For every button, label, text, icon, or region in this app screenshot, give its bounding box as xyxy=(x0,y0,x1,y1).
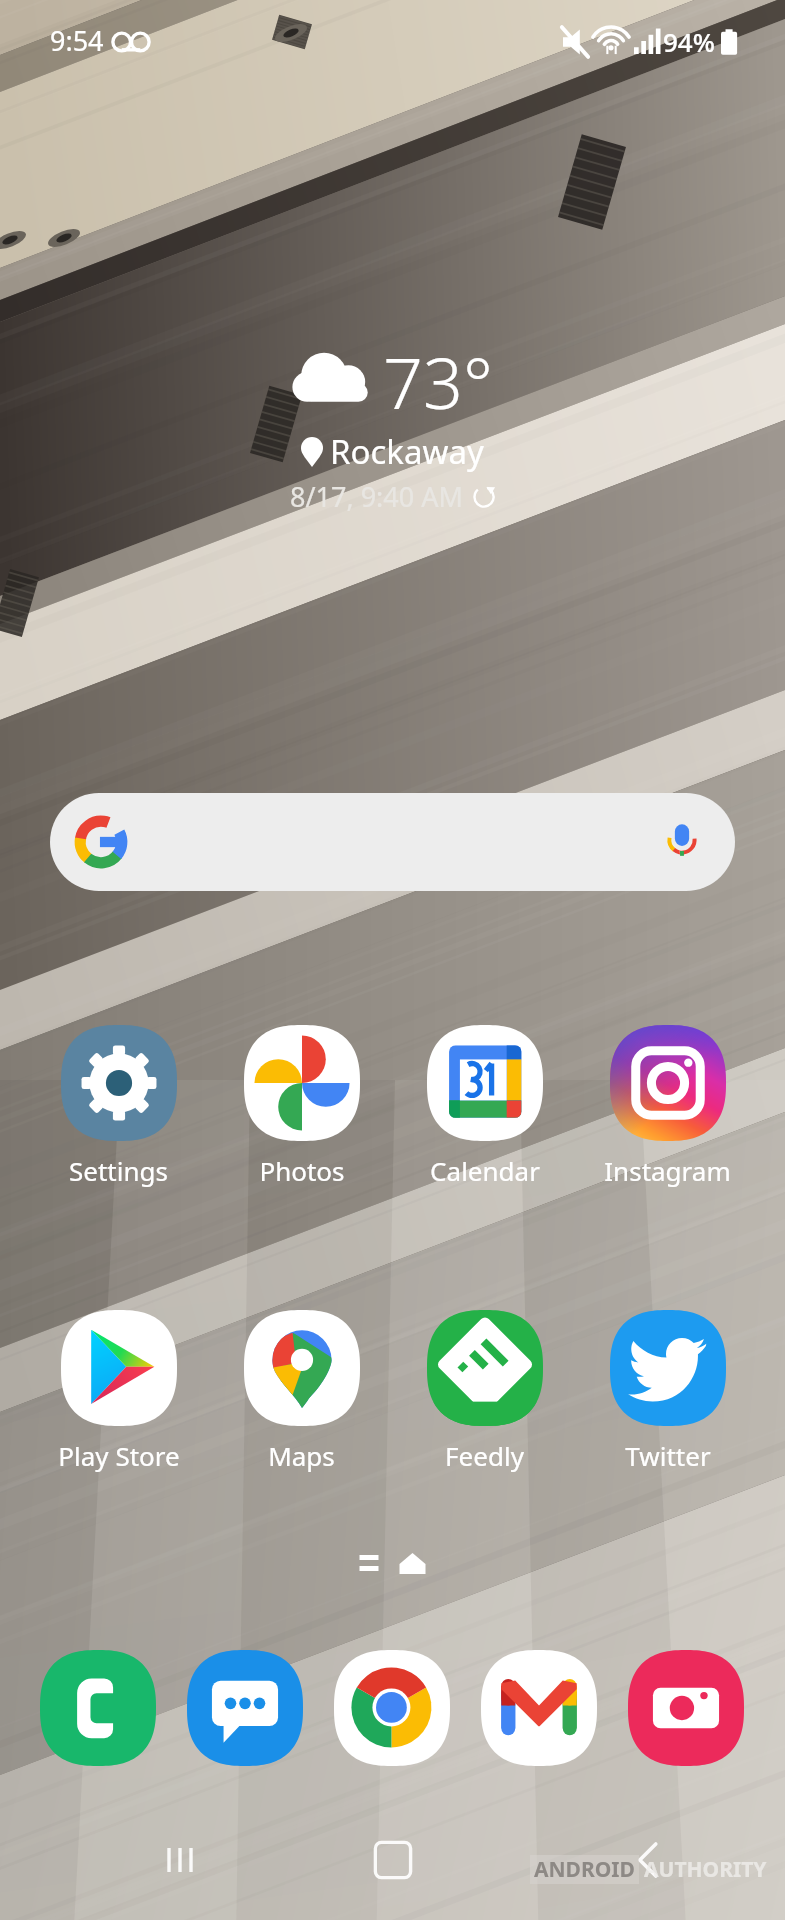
button[interactable]: Photos xyxy=(210,1025,393,1188)
button[interactable]: Twitter xyxy=(576,1310,759,1473)
staticText: Feedly xyxy=(445,1438,524,1473)
button[interactable]: Play Store xyxy=(27,1310,210,1473)
staticText: Maps xyxy=(268,1438,335,1473)
staticText: Photos xyxy=(259,1153,345,1188)
staticText: 94% xyxy=(663,24,715,59)
staticText: Rockaway xyxy=(330,429,484,474)
staticText: 9:54 xyxy=(50,22,104,59)
staticText: Twitter xyxy=(625,1438,711,1473)
button[interactable]: Maps xyxy=(210,1310,393,1473)
button[interactable]: Recents xyxy=(140,1820,220,1900)
button[interactable]: Camera xyxy=(628,1650,744,1766)
button[interactable]: Settings xyxy=(27,1025,210,1188)
button[interactable]: Messages xyxy=(187,1650,303,1766)
button[interactable]: Back xyxy=(607,1820,687,1900)
staticText: ANDROID xyxy=(534,1855,635,1884)
staticText: 8/17, 9:40 AM xyxy=(290,478,463,515)
staticText: Settings xyxy=(69,1153,168,1188)
button[interactable]: Phone xyxy=(40,1650,156,1766)
button[interactable]: Gmail xyxy=(481,1650,597,1766)
button[interactable]: Instagram xyxy=(576,1025,759,1188)
staticText: Instagram xyxy=(604,1153,731,1188)
button[interactable]: Search xyxy=(50,793,735,891)
button[interactable]: 73° xyxy=(0,330,785,530)
button[interactable]: Home xyxy=(353,1820,433,1900)
button[interactable]: Calendar xyxy=(393,1025,576,1188)
staticText: 73° xyxy=(383,334,493,429)
button[interactable]: Chrome xyxy=(334,1650,450,1766)
button[interactable]: Feedly xyxy=(393,1310,576,1473)
staticText: AUTHORITY xyxy=(644,1855,767,1884)
staticText: Calendar xyxy=(430,1153,540,1188)
staticText: Play Store xyxy=(58,1438,180,1473)
